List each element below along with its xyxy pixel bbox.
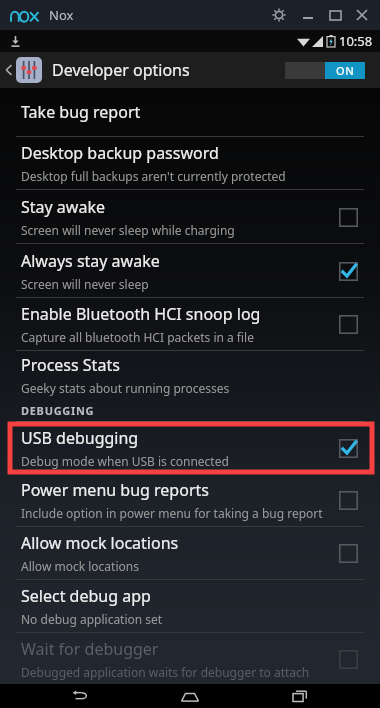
button[interactable]: Unchecked [331,536,365,570]
button[interactable]: Maximize [323,3,347,27]
button[interactable]: Home [160,684,220,708]
button[interactable]: Checked [331,431,365,465]
button[interactable]: Take bug report [0,88,380,136]
button[interactable]: Process Stats [0,351,380,399]
staticText: Debug mode when USB is connected [21,453,229,469]
button[interactable]: Checked [331,254,365,288]
staticText: Include option in power menu for taking … [21,505,323,521]
button[interactable]: Unchecked [331,200,365,234]
button[interactable]: ON [285,62,365,79]
staticText: Screen will never sleep while charging [21,222,235,238]
staticText: Select debug app [21,585,151,607]
button[interactable]: Developer options [0,57,285,83]
staticText: Debugged application waits for debugger … [21,664,310,680]
staticText: Geeky stats about running processes [21,380,230,396]
button[interactable]: Recent apps [270,684,330,708]
button[interactable]: Settings [266,2,292,28]
staticText: Screen will never sleep [21,276,149,292]
staticText: Developer options [52,59,190,81]
staticText: Allow mock locations [21,558,139,574]
button[interactable]: Wait for debugger [0,633,380,684]
staticText: Power menu bug reports [21,479,209,501]
staticText: USB debugging [21,427,139,449]
staticText: Stay awake [21,196,105,218]
button[interactable]: Desktop backup password [0,137,380,189]
button[interactable]: Power menu bug reports [0,474,380,526]
staticText: Desktop full backups aren't currently pr… [21,168,286,184]
button[interactable]: Stay awake [0,190,380,243]
staticText: Take bug report [21,101,141,123]
staticText: DEBUGGING [21,403,95,418]
button[interactable]: Unchecked [331,642,365,676]
button[interactable]: Unchecked [331,483,365,517]
button[interactable]: Unchecked [331,307,365,341]
button[interactable]: Always stay awake [0,244,380,297]
button[interactable]: Select debug app [0,580,380,632]
staticText: Process Stats [21,354,120,376]
staticText: Desktop backup password [21,142,219,164]
button[interactable]: Back [50,684,110,708]
button[interactable]: Allow mock locations [0,527,380,579]
staticText: Always stay awake [21,250,160,272]
button[interactable]: Close [350,3,374,27]
button[interactable]: USB debugging [0,422,380,474]
staticText: Nox [49,6,74,24]
staticText: Capture all bluetooth HCI packets in a f… [21,329,254,345]
staticText: 10:58 [339,32,373,50]
staticText: Allow mock locations [21,532,179,554]
staticText: ON [336,63,355,78]
button[interactable]: Minimize [296,3,320,27]
staticText: Wait for debugger [21,638,159,660]
staticText: Enable Bluetooth HCI snoop log [21,303,261,325]
button[interactable]: Enable Bluetooth HCI snoop log [0,298,380,350]
staticText: No debug application set [21,611,163,627]
